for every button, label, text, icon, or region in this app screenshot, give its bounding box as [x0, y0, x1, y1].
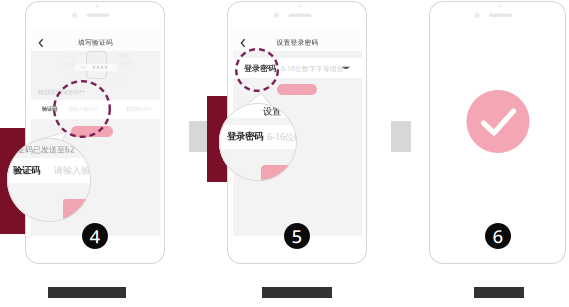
staticText: 请输入验证码: [68, 106, 98, 112]
button[interactable]: Show password: [233, 28, 247, 40]
button[interactable]: [71, 126, 113, 137]
staticText: 获取验证码: [126, 106, 151, 112]
staticText: 验证码: [13, 165, 40, 176]
staticText: 登录密码: [227, 131, 263, 142]
staticText: 6-16位数字: [267, 130, 312, 143]
staticText: 验证码已发送至62**: [38, 88, 85, 96]
staticText: 设置: [263, 106, 281, 117]
staticText: 6: [492, 224, 503, 248]
staticText: 验证码已发送至62**: [9, 144, 83, 155]
staticText: 验证码: [42, 106, 57, 112]
staticText: 6-16位数字字母组合: [281, 64, 344, 73]
staticText: 填写验证码: [78, 38, 113, 47]
staticText: 请输入验证码: [54, 165, 108, 176]
staticText: 4: [89, 224, 100, 248]
staticText: 5: [291, 224, 302, 248]
button[interactable]: [277, 84, 317, 95]
staticText: 登录密码: [244, 64, 276, 73]
staticText: 设置登录密码: [276, 38, 318, 47]
